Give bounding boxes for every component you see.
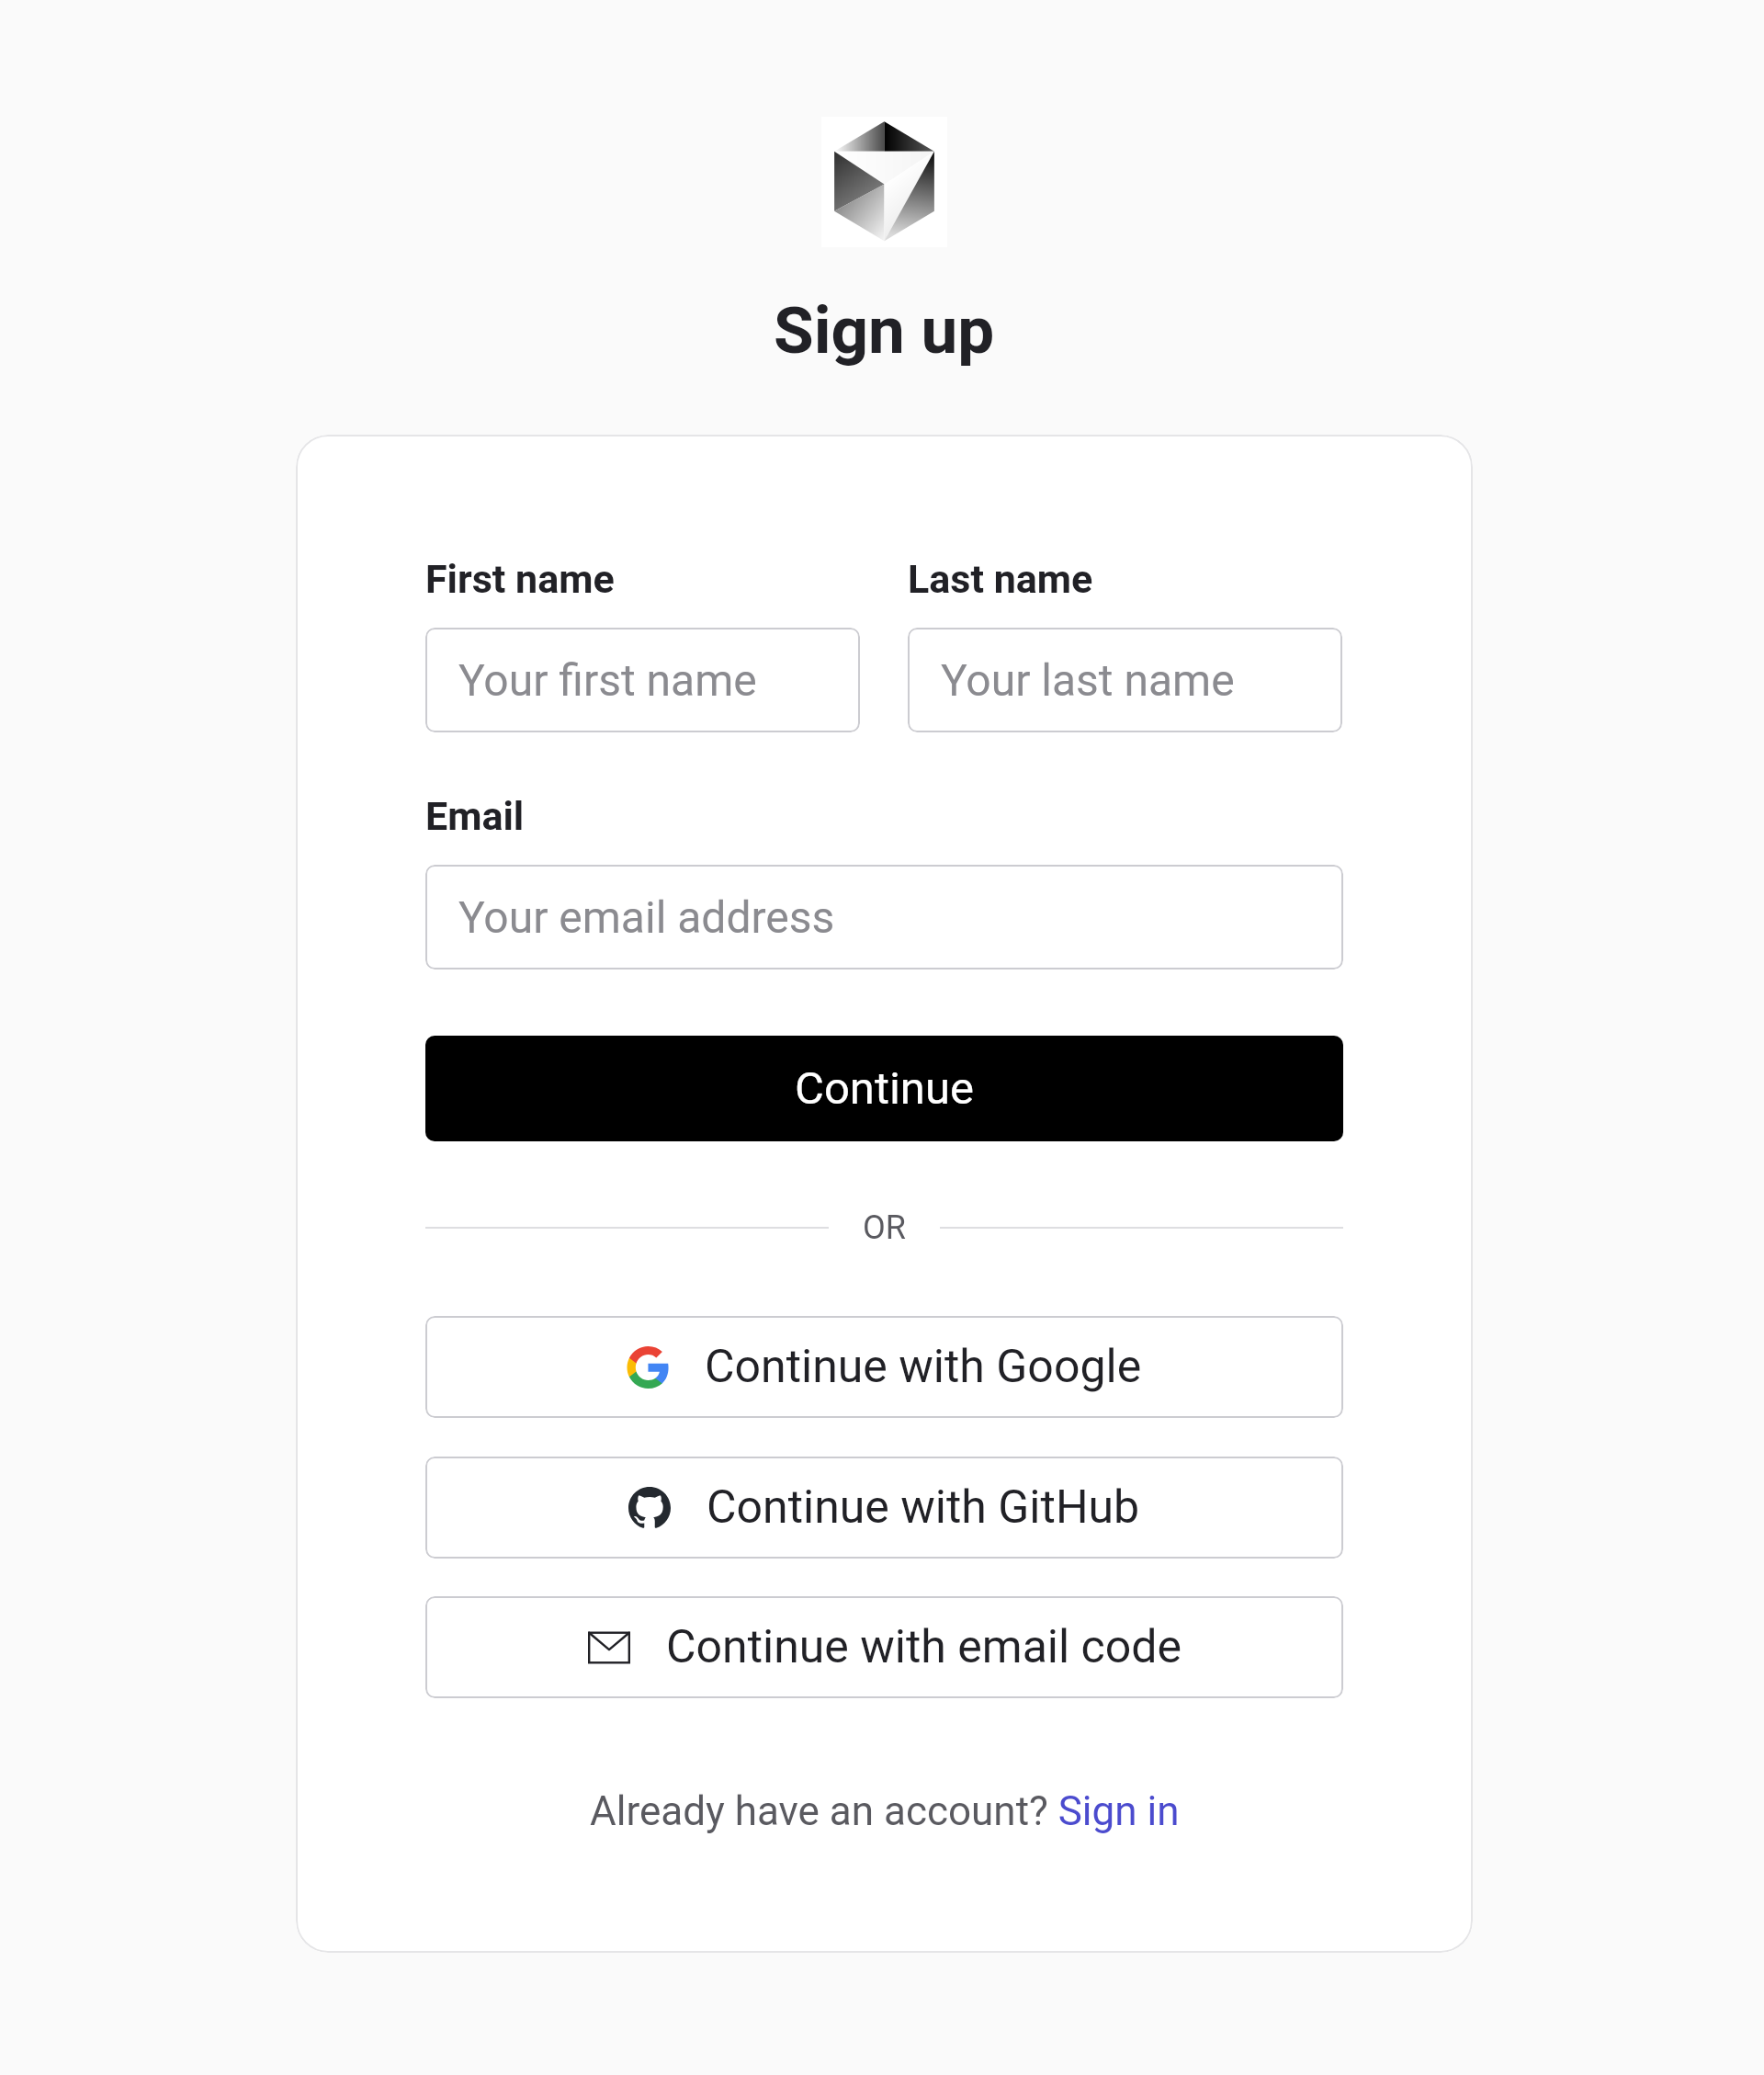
staticText: Already have an account? Sign in	[590, 1787, 1180, 1835]
staticText: Last name	[908, 556, 1093, 602]
button[interactable]: Your first name	[425, 628, 860, 732]
button[interactable]: Your last name	[908, 628, 1342, 732]
staticText: Sign up	[774, 292, 995, 369]
staticText: Your email address	[458, 891, 835, 943]
staticText: Continue with GitHub	[707, 1480, 1140, 1535]
button[interactable]: Continue	[425, 1036, 1343, 1141]
staticText: Continue with email code	[666, 1620, 1182, 1674]
staticText: OR	[863, 1208, 906, 1247]
staticText: Your last name	[941, 654, 1235, 706]
button[interactable]: Already have an account? Sign in	[425, 1787, 1343, 1835]
button[interactable]: Your email address	[425, 865, 1343, 969]
staticText: Continue	[795, 1062, 974, 1115]
staticText: First name	[425, 556, 615, 602]
staticText: Email	[425, 793, 525, 839]
staticText: Your first name	[458, 654, 757, 706]
staticText: Continue with Google	[705, 1340, 1142, 1394]
button[interactable]: Continue with GitHub	[425, 1457, 1343, 1559]
button[interactable]: Continue with email code	[425, 1596, 1343, 1698]
button[interactable]: Continue with Google	[425, 1316, 1343, 1418]
